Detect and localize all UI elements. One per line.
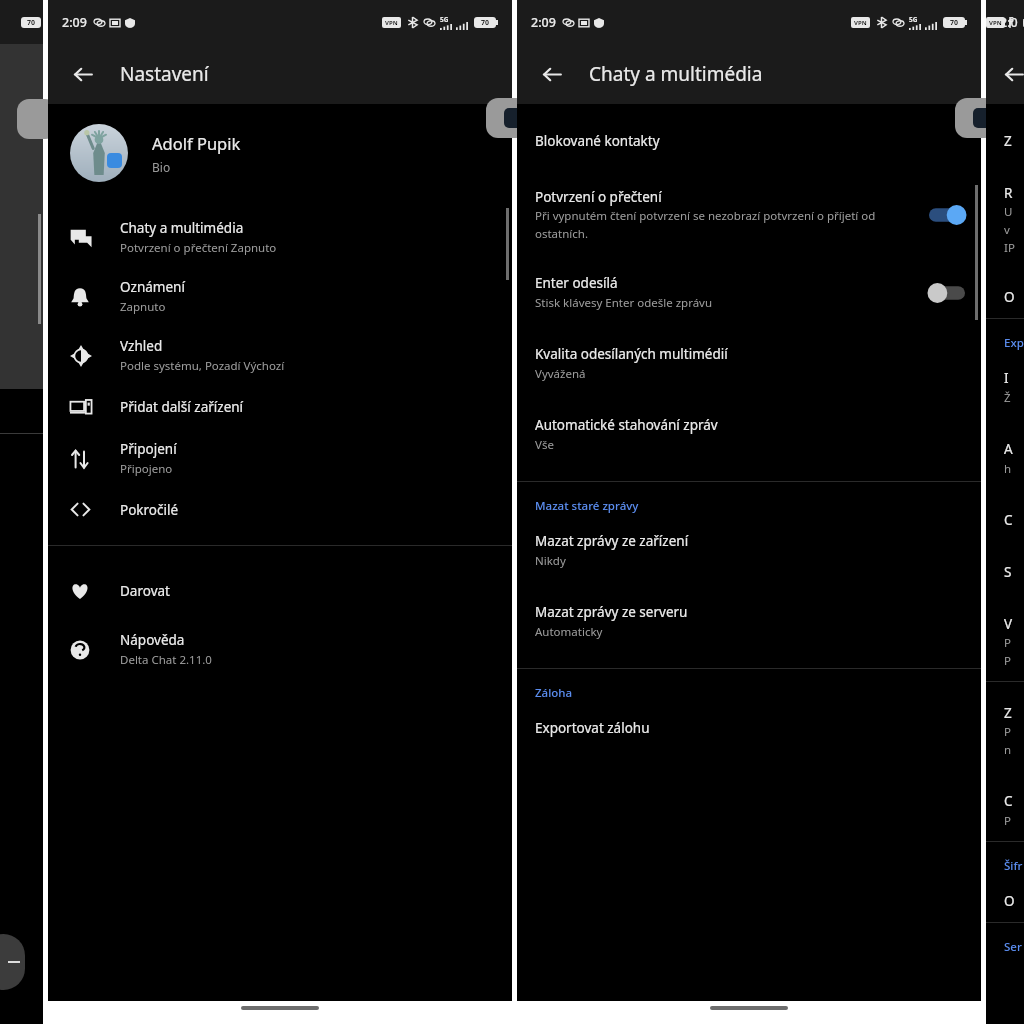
- staticText: v reálném čase vaši: [1004, 222, 1008, 238]
- button[interactable]: Zabezpečení: [986, 692, 1024, 770]
- staticText: VPN: [385, 19, 398, 27]
- button[interactable]: Blokované kontakty: [517, 120, 981, 162]
- button[interactable]: Adolf Pupik: [48, 118, 512, 188]
- button[interactable]: Odeslat zprávu: [986, 276, 1024, 318]
- button[interactable]: Darovat: [48, 570, 512, 612]
- staticText: Nikdy: [535, 553, 566, 569]
- staticText: Instalovat aplikaci: [1004, 369, 1008, 387]
- staticText: Požadovat ověření: [1004, 813, 1008, 829]
- staticText: 70: [950, 18, 959, 28]
- staticText: Chatovat: [1004, 511, 1008, 529]
- staticText: 2:09: [531, 14, 556, 31]
- button[interactable]: Pokročilé: [48, 488, 512, 531]
- button[interactable]: Chat bubble: [955, 98, 997, 138]
- staticText: 70: [27, 18, 36, 28]
- staticText: ostatních.: [535, 226, 589, 242]
- staticText: Automatické stahování zpráv: [535, 416, 718, 434]
- staticText: Server: [1004, 939, 1024, 955]
- button[interactable]: Streamovat: [986, 551, 1024, 593]
- button[interactable]: Vzhled: [48, 326, 512, 385]
- staticText: Šifrování: [1004, 858, 1024, 874]
- button[interactable]: Back: [66, 57, 100, 91]
- staticText: Kvalita odesílaných multimédií: [535, 345, 728, 363]
- button[interactable]: Instalovat aplikaci: [986, 357, 1024, 418]
- staticText: Požadovat ověření: [1004, 724, 1008, 740]
- button[interactable]: Automatické stahování zpráv: [517, 404, 981, 465]
- button[interactable]: Potvrzení o přečtení: [517, 176, 981, 254]
- staticText: Pokročilé: [120, 501, 179, 519]
- staticText: Připojeno: [120, 461, 173, 477]
- button[interactable]: On: [929, 205, 965, 225]
- button[interactable]: Chat bubble: [486, 98, 528, 138]
- staticText: Chaty a multimédia: [589, 61, 763, 87]
- staticText: IP adresu: [1004, 240, 1008, 256]
- staticText: nedávno použité: [1004, 742, 1008, 758]
- staticText: Žádná: [1004, 390, 1008, 406]
- button[interactable]: Exportovat zálohu: [517, 707, 981, 749]
- button[interactable]: Zobrazit stav: [986, 120, 1024, 162]
- staticText: VPN: [854, 19, 867, 27]
- staticText: Zapnuto: [120, 299, 166, 315]
- staticText: Vyvážená: [535, 366, 586, 382]
- staticText: Podle systému, Pozadí Výchozí: [120, 358, 285, 374]
- staticText: Mazat zprávy ze zařízení: [535, 532, 689, 550]
- button[interactable]: Adresa serveru: [986, 428, 1024, 489]
- staticText: Adresa serveru: [1004, 440, 1008, 458]
- staticText: Vše: [535, 437, 554, 453]
- staticText: https://: [1004, 461, 1008, 477]
- button[interactable]: Mazat zprávy ze serveru: [517, 591, 981, 652]
- staticText: Potvrzení o přečtení Zapnuto: [120, 240, 277, 256]
- button[interactable]: Vývojářský režim: [986, 603, 1024, 681]
- staticText: Přidat další zařízení: [120, 398, 244, 416]
- staticText: 5G: [440, 15, 449, 24]
- staticText: Automaticky: [535, 624, 603, 640]
- staticText: Reálný čas: [1004, 184, 1008, 202]
- staticText: Mazat zprávy ze serveru: [535, 603, 688, 621]
- button[interactable]: Action: [0, 934, 25, 990]
- staticText: Delta Chat 2.11.0: [120, 652, 212, 668]
- button[interactable]: Nápověda: [48, 620, 512, 679]
- button[interactable]: Back: [535, 57, 569, 91]
- staticText: Darovat: [120, 582, 170, 600]
- button[interactable]: Chaty a multimédia: [48, 208, 512, 267]
- staticText: Mazat staré zprávy: [535, 498, 639, 514]
- staticText: Při vypnutém čtení potvrzení se nezobraz…: [535, 208, 876, 224]
- button[interactable]: Mazat zprávy ze zařízení: [517, 520, 981, 581]
- button[interactable]: Enter odesílá: [517, 262, 981, 323]
- button[interactable]: Reálný čas: [986, 172, 1024, 268]
- staticText: Vzhled: [120, 337, 163, 355]
- staticText: Exportovat zálohu: [535, 719, 650, 737]
- button[interactable]: Chatovat: [986, 499, 1024, 541]
- button[interactable]: Připojení: [48, 429, 512, 488]
- staticText: 2:09: [1000, 14, 1024, 31]
- staticText: Odeslat klíč: [1004, 892, 1008, 910]
- staticText: 70: [481, 18, 490, 28]
- staticText: Experimentální: [1004, 335, 1024, 351]
- button[interactable]: Off: [929, 283, 965, 303]
- staticText: Chránit obrazovku: [1004, 792, 1008, 810]
- staticText: Povolit režim ladění: [1004, 635, 1008, 651]
- staticText: Vývojářský režim: [1004, 615, 1008, 633]
- button[interactable]: Back: [1004, 57, 1024, 91]
- staticText: VPN: [989, 19, 1002, 27]
- button[interactable]: Chránit obrazovku: [986, 780, 1024, 841]
- staticText: Streamovat: [1004, 563, 1008, 581]
- button[interactable]: Kvalita odesílaných multimédií: [517, 333, 981, 394]
- staticText: Umožňuje ostatním vidět: [1004, 204, 1008, 220]
- staticText: Adolf Pupik: [152, 132, 241, 154]
- staticText: Nastavení: [120, 61, 209, 87]
- staticText: Blokované kontakty: [535, 132, 660, 150]
- staticText: Nápověda: [120, 631, 185, 649]
- staticText: Bio: [152, 159, 171, 175]
- staticText: Oznámení: [120, 278, 185, 296]
- staticText: Záloha: [535, 685, 573, 701]
- staticText: Odeslat zprávu: [1004, 288, 1008, 306]
- button[interactable]: Oznámení: [48, 267, 512, 326]
- staticText: Použít jen pokud: [1004, 653, 1008, 669]
- staticText: Chaty a multimédia: [120, 219, 244, 237]
- button[interactable]: Přidat další zařízení: [48, 385, 512, 429]
- staticText: Připojení: [120, 440, 177, 458]
- button[interactable]: Odeslat klíč: [986, 880, 1024, 922]
- staticText: Zobrazit stav: [1004, 132, 1008, 150]
- staticText: Enter odesílá: [535, 274, 618, 292]
